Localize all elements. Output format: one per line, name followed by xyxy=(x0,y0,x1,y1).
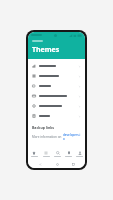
button[interactable] xyxy=(28,101,85,111)
staticText: developers.io xyxy=(63,133,81,141)
button[interactable] xyxy=(28,61,85,71)
button[interactable]: Recents xyxy=(69,160,77,168)
button[interactable]: Home xyxy=(28,148,40,160)
button[interactable]: Home xyxy=(53,160,61,168)
button[interactable] xyxy=(28,81,85,91)
staticText: Themes xyxy=(32,45,60,55)
button[interactable]: Library xyxy=(40,148,52,160)
button[interactable]: Back xyxy=(36,160,44,168)
button[interactable]: developers.io xyxy=(63,133,81,141)
button[interactable]: Profile xyxy=(74,148,85,160)
button[interactable] xyxy=(28,91,85,101)
button[interactable]: Saved xyxy=(63,148,74,160)
button[interactable]: Search xyxy=(52,148,63,160)
staticText: Backup links xyxy=(32,125,55,130)
staticText: More information on xyxy=(32,135,63,139)
button[interactable] xyxy=(28,71,85,81)
button[interactable] xyxy=(28,111,85,121)
